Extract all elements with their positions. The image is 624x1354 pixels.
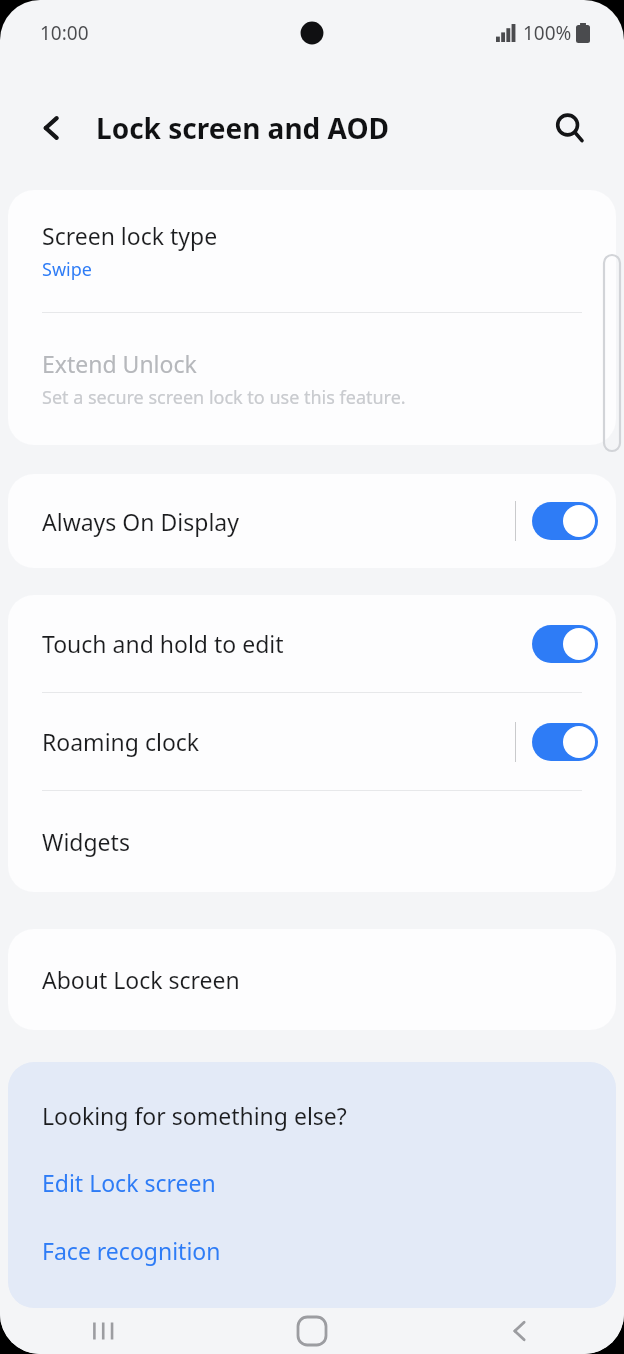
staticText: Lock screen and AOD <box>96 109 390 147</box>
staticText: Looking for something else? <box>42 1100 347 1131</box>
staticText: Always On Display <box>42 506 239 537</box>
button[interactable]: Toggle on <box>532 502 598 540</box>
button[interactable]: Edit Lock screen <box>8 1165 616 1200</box>
staticText: Roaming clock <box>42 726 200 757</box>
button[interactable]: Toggle on <box>532 723 598 761</box>
button[interactable]: Recents <box>0 1308 208 1354</box>
button[interactable]: Screen lock type <box>8 190 616 312</box>
staticText: Face recognition <box>42 1235 221 1266</box>
button[interactable]: Face recognition <box>8 1233 616 1268</box>
staticText: Screen lock type <box>42 220 218 251</box>
staticText: Extend Unlock <box>42 348 197 379</box>
button[interactable]: Roaming clock <box>8 693 616 790</box>
staticText: Touch and hold to edit <box>42 628 284 659</box>
staticText: Swipe <box>42 257 92 282</box>
staticText: Edit Lock screen <box>42 1167 216 1198</box>
button[interactable]: Toggle on <box>532 625 598 663</box>
button[interactable]: Back <box>416 1308 624 1354</box>
button[interactable]: Back <box>22 98 82 158</box>
staticText: Widgets <box>42 826 130 857</box>
button[interactable]: Extend Unlock <box>8 313 616 445</box>
button[interactable]: Touch and hold to edit <box>8 595 616 692</box>
staticText: 100% <box>523 20 572 46</box>
button[interactable]: Home <box>208 1308 416 1354</box>
button[interactable]: About Lock screen <box>8 929 616 1030</box>
button[interactable]: Widgets <box>8 791 616 892</box>
staticText: Set a secure screen lock to use this fea… <box>42 385 406 410</box>
button[interactable]: Search <box>540 98 600 158</box>
staticText: 10:00 <box>40 20 89 46</box>
button[interactable]: Always On Display <box>8 474 616 568</box>
staticText: About Lock screen <box>42 964 240 995</box>
